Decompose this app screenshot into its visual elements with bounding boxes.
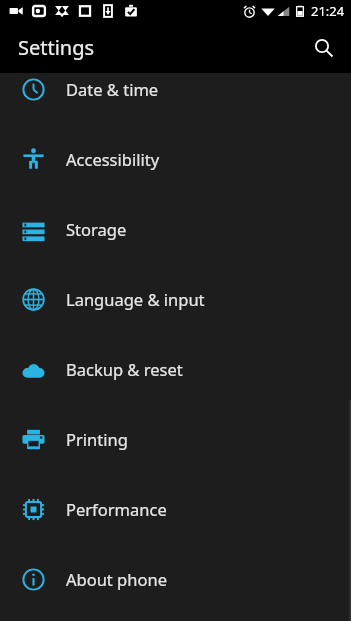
staticText: Date & time [66, 78, 159, 100]
button[interactable]: Accessibility [0, 124, 351, 194]
staticText: Accessibility [66, 148, 160, 170]
button[interactable]: About phone [0, 544, 351, 614]
button[interactable]: Storage [0, 194, 351, 264]
staticText: 21:24 [311, 2, 345, 20]
button[interactable]: Search [306, 30, 342, 66]
button[interactable]: Performance [0, 474, 351, 544]
staticText: Settings [18, 34, 95, 61]
button[interactable]: Date & time [0, 54, 351, 124]
button[interactable]: Backup & reset [0, 334, 351, 404]
staticText: About phone [66, 568, 167, 590]
staticText: Backup & reset [66, 358, 183, 380]
staticText: Performance [66, 498, 167, 520]
button[interactable]: Printing [0, 404, 351, 474]
staticText: Printing [66, 428, 128, 450]
staticText: Language & input [66, 288, 205, 310]
staticText: Storage [66, 218, 127, 240]
button[interactable]: Language & input [0, 264, 351, 334]
